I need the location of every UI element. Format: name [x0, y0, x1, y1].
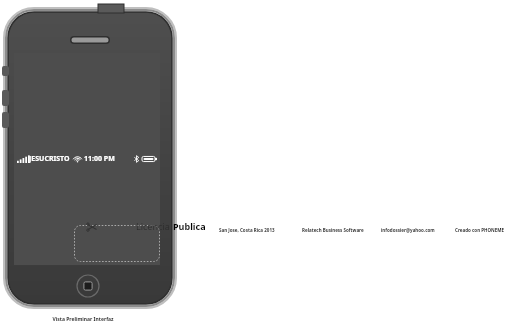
staticText: JESUCRISTO [29, 154, 70, 164]
staticText: Licencia [136, 220, 173, 232]
staticText: San Jose, Costa Rica 2013 [219, 227, 275, 233]
button[interactable]: Inicio [76, 274, 100, 298]
button[interactable]: Vista Preliminar Interfaz [52, 316, 114, 323]
button[interactable]: Licencia [136, 220, 206, 232]
staticText: Vista Preliminar Interfaz [52, 316, 114, 323]
staticText: 11:00 PM [84, 154, 115, 164]
button[interactable]: Cortar cupon [74, 225, 160, 262]
button[interactable]: Cortar cupon [86, 221, 98, 233]
staticText: Publica [173, 220, 206, 232]
staticText: Relatech Business Software [302, 227, 364, 233]
staticText: Creado con PHONEME [455, 227, 504, 233]
button[interactable]: JESUCRISTO [14, 53, 160, 265]
button[interactable]: infodossier@yahoo.com [381, 227, 435, 233]
button[interactable]: Creado con PHONEME [455, 227, 504, 233]
staticText: infodossier@yahoo.com [381, 227, 435, 233]
button[interactable]: Relatech Business Software [302, 227, 364, 233]
button[interactable]: San Jose, Costa Rica 2013 [219, 227, 275, 233]
